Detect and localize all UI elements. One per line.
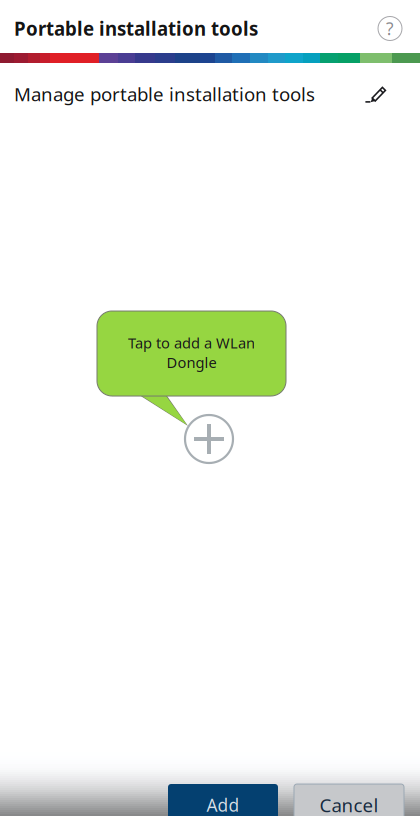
staticText: Add [206,793,239,816]
staticText: ? [386,17,394,40]
staticText: Portable installation tools [14,16,258,41]
button[interactable]: Help [378,14,402,38]
button[interactable]: Add [168,784,278,816]
button[interactable]: Add WLan Dongle [183,413,235,465]
staticText: Cancel [319,793,378,816]
button[interactable]: Cancel [294,784,404,816]
staticText: Dongle [166,352,216,372]
button[interactable]: Manage portable installation tools [0,63,420,113]
staticText: Tap to add a WLan [128,333,255,352]
staticText: Manage portable installation tools [14,82,315,106]
